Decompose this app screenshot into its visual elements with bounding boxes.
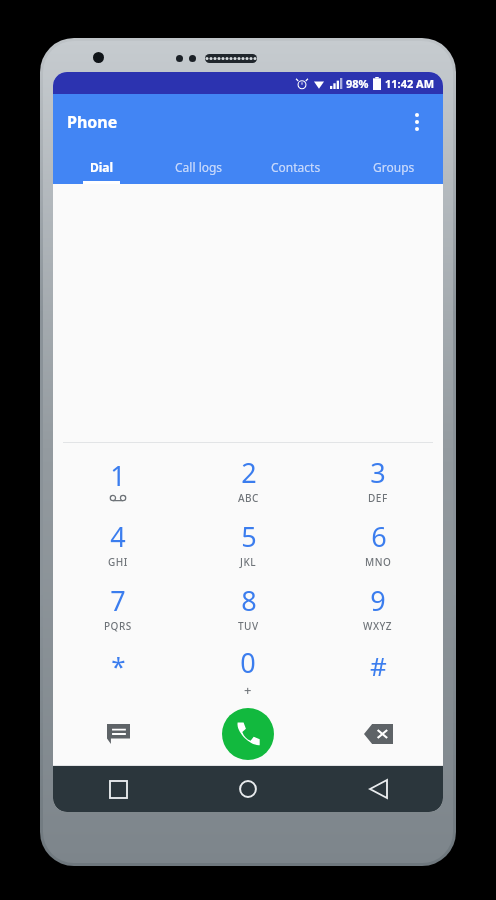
button[interactable]: 9 — [313, 575, 443, 639]
staticText: Call logs — [175, 159, 223, 175]
staticText: 4 — [110, 518, 126, 555]
button[interactable]: Dial — [53, 150, 150, 184]
button[interactable]: 5 — [183, 511, 313, 575]
button[interactable]: 8 — [183, 575, 313, 639]
staticText: 8 — [241, 582, 257, 619]
button[interactable]: Contacts — [247, 150, 345, 184]
button[interactable]: 1 — [53, 447, 183, 511]
button[interactable]: Groups — [345, 150, 443, 184]
staticText: TUV — [238, 619, 259, 633]
staticText: Contacts — [271, 159, 321, 175]
staticText: 3 — [370, 454, 386, 491]
staticText: DEF — [368, 491, 388, 505]
button[interactable]: * — [53, 639, 183, 703]
button[interactable]: Call — [222, 708, 274, 760]
staticText: JKL — [240, 555, 257, 569]
button[interactable]: # — [313, 639, 443, 703]
button[interactable]: 7 — [53, 575, 183, 639]
staticText: 2 — [241, 454, 257, 491]
button[interactable]: Recents — [53, 766, 183, 812]
button[interactable]: 3 — [313, 447, 443, 511]
staticText: Phone — [67, 111, 118, 133]
button[interactable]: More options — [397, 102, 437, 142]
staticText: 7 — [110, 582, 126, 619]
staticText: Groups — [373, 159, 415, 175]
staticText: 98% — [346, 76, 369, 91]
staticText: 1 — [110, 457, 126, 494]
staticText: PQRS — [104, 619, 132, 633]
staticText: 0 — [240, 644, 256, 681]
staticText: ABC — [238, 491, 259, 505]
button[interactable]: 0 — [183, 639, 313, 703]
staticText: * — [111, 648, 126, 683]
button[interactable]: 2 — [183, 447, 313, 511]
button[interactable]: Home — [183, 766, 313, 812]
button[interactable]: 6 — [313, 511, 443, 575]
staticText: 9 — [370, 582, 386, 619]
staticText: 11:42 AM — [385, 76, 435, 91]
staticText: GHI — [108, 555, 128, 569]
staticText: WXYZ — [363, 619, 393, 633]
staticText: Dial — [90, 159, 114, 175]
button[interactable]: Message — [53, 703, 183, 765]
staticText: + — [244, 681, 252, 699]
staticText: 5 — [241, 518, 257, 555]
staticText: 6 — [371, 518, 387, 555]
button[interactable]: Call logs — [150, 150, 247, 184]
button[interactable]: 4 — [53, 511, 183, 575]
button[interactable]: Back — [313, 766, 443, 812]
staticText: # — [370, 648, 387, 683]
button[interactable]: Backspace — [313, 703, 443, 765]
staticText: MNO — [365, 555, 392, 569]
